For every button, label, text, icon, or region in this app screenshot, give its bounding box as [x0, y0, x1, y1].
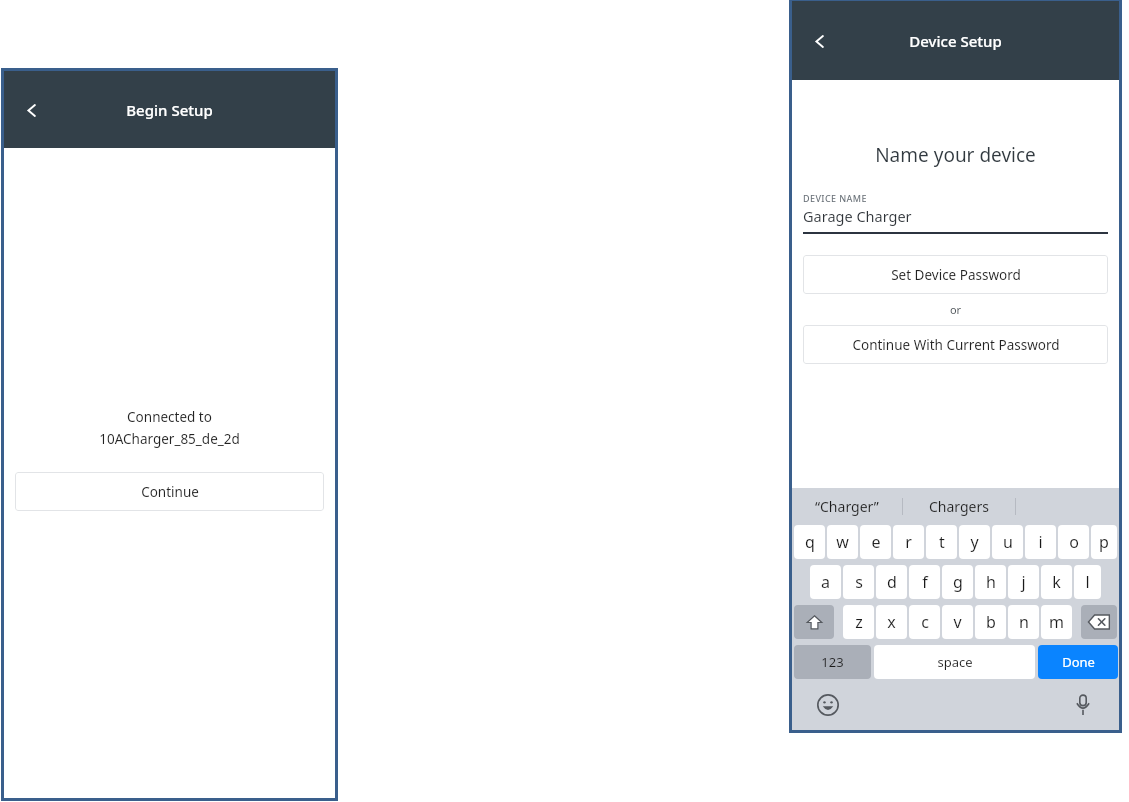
staticText: z — [855, 611, 863, 633]
button[interactable]: x — [876, 605, 907, 639]
staticText: t — [939, 531, 945, 553]
button[interactable]: Back — [802, 24, 836, 58]
staticText: c — [921, 611, 929, 633]
staticText: DEVICE NAME — [803, 192, 867, 204]
button[interactable]: s — [843, 565, 874, 599]
staticText: a — [821, 571, 830, 593]
button[interactable]: t — [926, 525, 957, 559]
button[interactable]: h — [975, 565, 1006, 599]
staticText: Continue With Current Password — [852, 336, 1060, 354]
button[interactable]: p — [1091, 525, 1117, 559]
button[interactable]: q — [794, 525, 825, 559]
button[interactable]: g — [942, 565, 973, 599]
button[interactable]: 123 — [794, 645, 871, 679]
button[interactable]: Emoji — [812, 689, 844, 721]
button[interactable]: “Charger” — [792, 488, 902, 525]
button[interactable]: d — [876, 565, 907, 599]
button[interactable]: c — [909, 605, 940, 639]
button[interactable]: f — [909, 565, 940, 599]
button[interactable]: m — [1041, 605, 1072, 639]
staticText: f — [922, 571, 928, 593]
staticText: or — [792, 302, 1119, 317]
button[interactable]: Chargers — [903, 488, 1015, 525]
button[interactable]: w — [827, 525, 858, 559]
staticText: v — [953, 611, 962, 633]
staticText: Connected to — [127, 408, 212, 426]
button[interactable]: Dictation — [1067, 689, 1099, 721]
staticText: h — [986, 571, 996, 593]
staticText: Chargers — [929, 497, 989, 516]
staticText: x — [887, 611, 896, 633]
staticText: w — [836, 531, 849, 553]
button[interactable]: i — [1025, 525, 1056, 559]
staticText: g — [953, 571, 963, 593]
staticText: e — [871, 531, 881, 553]
staticText: m — [1049, 611, 1064, 633]
staticText: Continue — [141, 483, 199, 501]
staticText: l — [1085, 571, 1090, 593]
button[interactable]: Done — [1038, 645, 1118, 679]
button[interactable]: e — [860, 525, 891, 559]
staticText: s — [855, 571, 863, 593]
staticText: p — [1099, 531, 1109, 553]
staticText: “Charger” — [815, 497, 879, 516]
button[interactable]: a — [810, 565, 841, 599]
button[interactable]: j — [1008, 565, 1039, 599]
button[interactable]: r — [893, 525, 924, 559]
staticText: 10ACharger_85_de_2d — [99, 430, 240, 448]
button[interactable]: l — [1074, 565, 1101, 599]
staticText: Begin Setup — [126, 100, 213, 120]
staticText: Done — [1062, 653, 1095, 671]
staticText: b — [986, 611, 996, 633]
staticText: Name your device — [792, 142, 1119, 168]
staticText: u — [1003, 531, 1013, 553]
staticText: d — [887, 571, 897, 593]
button[interactable]: Continue — [15, 472, 324, 511]
staticText: q — [805, 531, 815, 553]
button[interactable]: z — [843, 605, 874, 639]
staticText: r — [905, 531, 912, 553]
staticText: Device Setup — [909, 31, 1002, 51]
button[interactable]: Back — [14, 93, 48, 127]
button[interactable]: k — [1041, 565, 1072, 599]
button[interactable]: Set Device Password — [803, 255, 1108, 294]
button[interactable]: b — [975, 605, 1006, 639]
button[interactable]: Shift — [794, 605, 834, 639]
button[interactable]: n — [1008, 605, 1039, 639]
button[interactable]: Backspace — [1081, 605, 1117, 639]
button[interactable]: y — [959, 525, 990, 559]
button[interactable]: Continue With Current Password — [803, 325, 1108, 364]
staticText: 123 — [821, 653, 844, 671]
button[interactable]: Garage Charger — [803, 206, 912, 226]
staticText: Set Device Password — [891, 266, 1021, 284]
staticText: k — [1052, 571, 1061, 593]
staticText: i — [1038, 531, 1043, 553]
staticText: space — [937, 653, 973, 671]
staticText: y — [970, 531, 979, 553]
button[interactable]: u — [992, 525, 1023, 559]
staticText: j — [1021, 571, 1026, 593]
staticText: n — [1019, 611, 1029, 633]
button[interactable]: o — [1058, 525, 1089, 559]
button[interactable]: space — [874, 645, 1035, 679]
button[interactable]: v — [942, 605, 973, 639]
staticText: o — [1069, 531, 1079, 553]
